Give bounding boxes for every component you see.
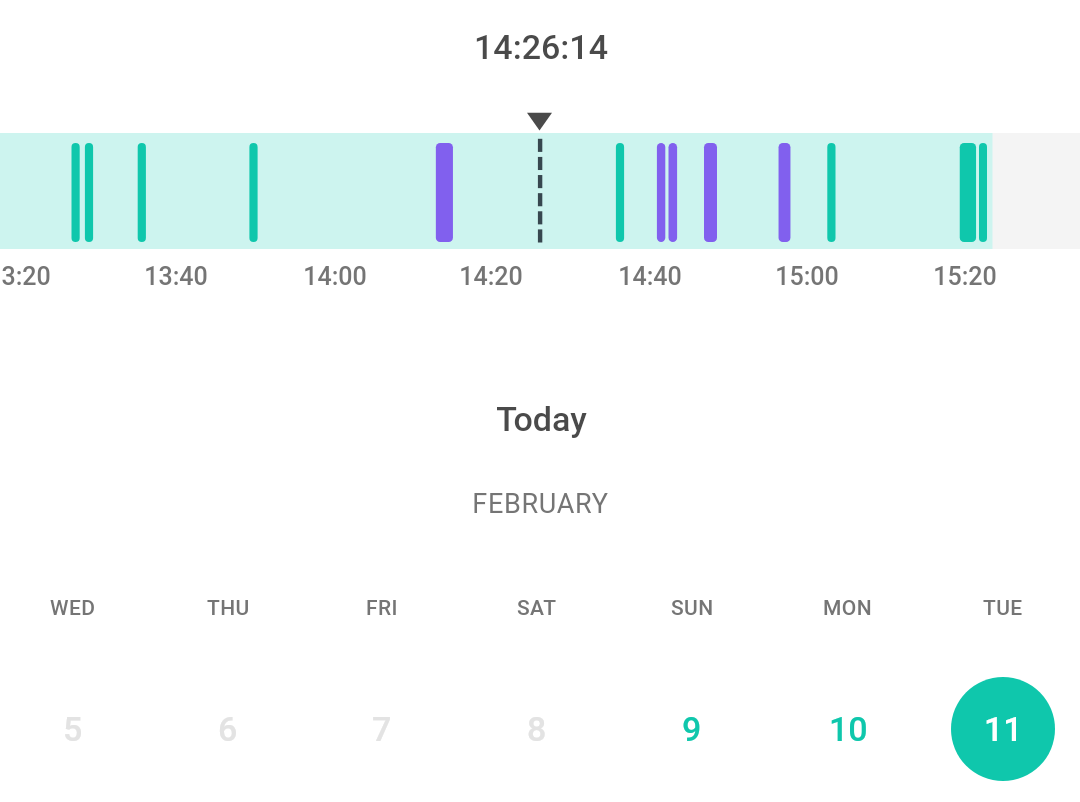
staticText: 14:20 xyxy=(459,262,523,291)
button[interactable]: SUN xyxy=(615,580,769,798)
staticText: THU xyxy=(207,596,250,621)
staticText: Today xyxy=(496,399,587,439)
staticText: 15:20 xyxy=(933,262,997,291)
button[interactable]: TUE xyxy=(926,580,1080,798)
staticText: WED xyxy=(50,596,96,621)
staticText: 5 xyxy=(63,709,83,749)
button[interactable]: SAT xyxy=(460,580,614,798)
staticText: SAT xyxy=(517,596,557,621)
staticText: 9 xyxy=(682,709,702,749)
button[interactable]: FRI xyxy=(305,580,459,798)
staticText: 10 xyxy=(829,709,868,749)
staticText: MON xyxy=(823,596,873,621)
button[interactable]: Activity timeline xyxy=(0,133,1080,249)
staticText: 7 xyxy=(372,709,392,749)
staticText: 14:40 xyxy=(618,262,682,291)
staticText: 15:00 xyxy=(775,262,839,291)
button[interactable]: MON xyxy=(771,580,925,798)
staticText: 8 xyxy=(527,709,547,749)
staticText: TUE xyxy=(983,596,1023,621)
staticText: SUN xyxy=(671,596,714,621)
button[interactable]: WED xyxy=(0,580,150,798)
staticText: 13:20 xyxy=(0,262,51,291)
staticText: 14:00 xyxy=(303,262,367,291)
staticText: FEBRUARY xyxy=(472,488,609,520)
staticText: 14:26:14 xyxy=(474,27,608,67)
staticText: 6 xyxy=(218,709,238,749)
button[interactable]: THU xyxy=(151,580,305,798)
other: Current time marker xyxy=(527,112,552,132)
staticText: FRI xyxy=(366,596,398,621)
staticText: 13:40 xyxy=(144,262,208,291)
staticText: 11 xyxy=(984,709,1023,749)
